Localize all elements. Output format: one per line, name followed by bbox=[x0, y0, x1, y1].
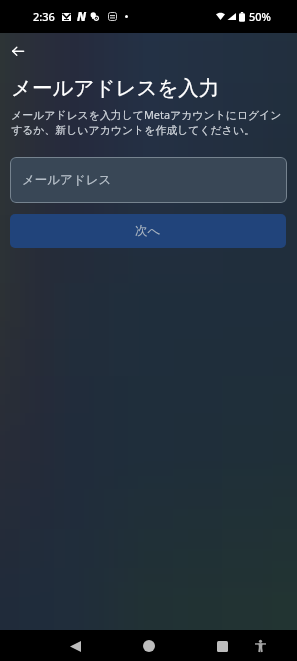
staticText: メールアドレスを入力してMetaアカウントにログイン bbox=[11, 107, 282, 124]
staticText: 2:36 bbox=[33, 9, 55, 24]
button[interactable]: Accessibility bbox=[246, 632, 274, 660]
button[interactable]: Back bbox=[60, 631, 90, 661]
button[interactable]: Home bbox=[134, 631, 164, 661]
staticText: メールアドレス bbox=[22, 172, 112, 188]
button[interactable]: Recent apps bbox=[207, 631, 237, 661]
staticText: 50% bbox=[249, 9, 271, 24]
button[interactable]: Back bbox=[0, 33, 36, 69]
staticText: メールアドレスを入力 bbox=[11, 75, 220, 101]
button[interactable]: 次へ bbox=[10, 214, 286, 248]
staticText: するか、新しいアカウントを作成してください。 bbox=[11, 124, 255, 140]
button[interactable]: メールアドレス bbox=[10, 157, 287, 203]
staticText: N bbox=[77, 9, 87, 25]
staticText: 次へ bbox=[135, 223, 161, 239]
